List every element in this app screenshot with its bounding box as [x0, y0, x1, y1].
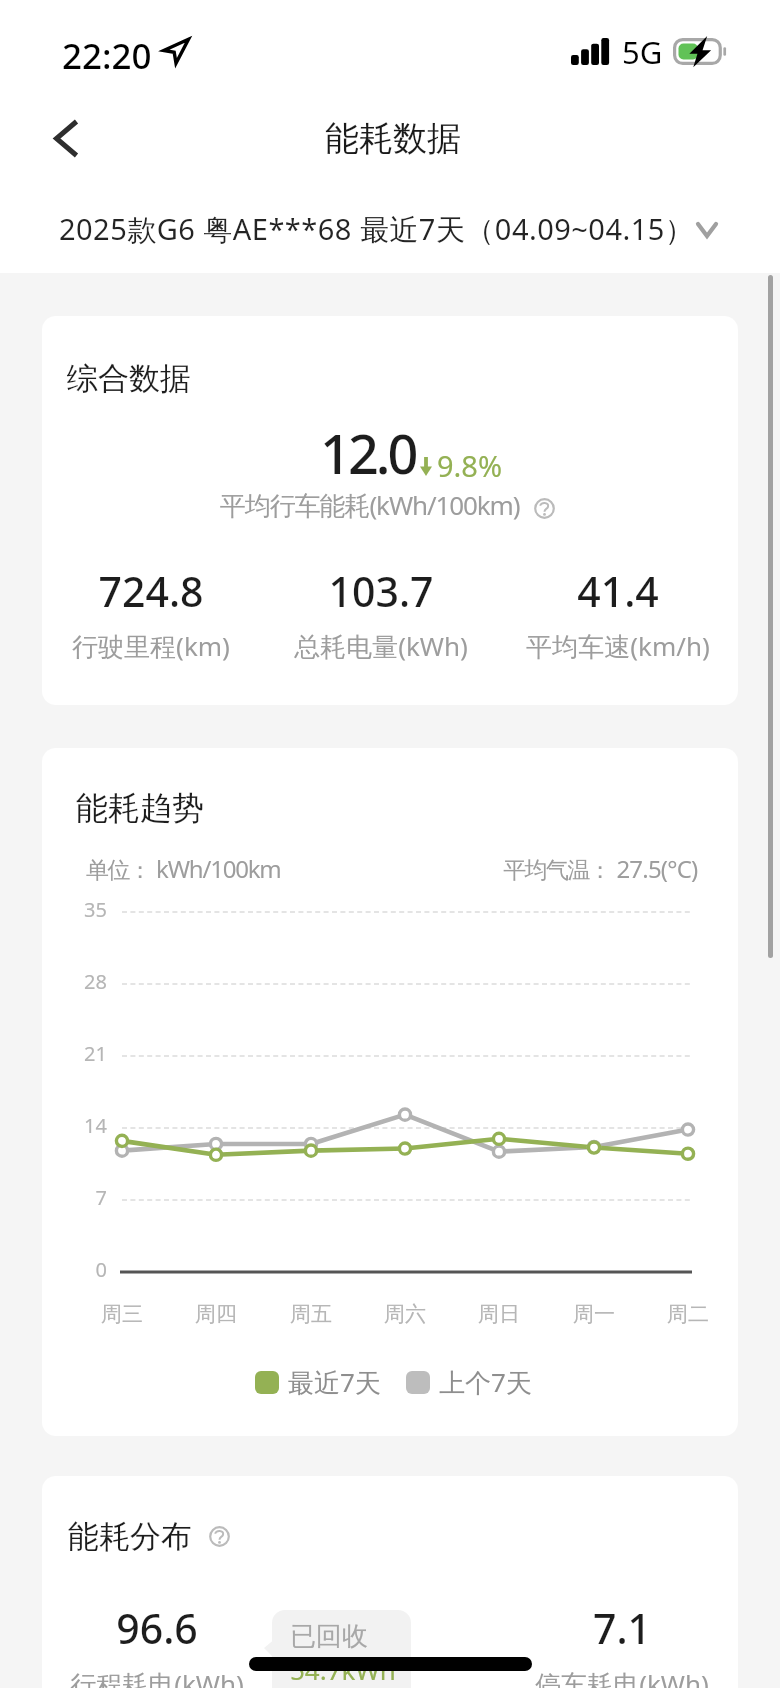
staticText: 724.8 — [42, 563, 301, 619]
staticText: 能耗数据 — [143, 117, 643, 160]
staticText: 27.5(°C) — [611, 852, 698, 885]
staticText: 周六 — [345, 1301, 465, 1327]
staticText: 96.6 — [42, 1600, 307, 1656]
staticText: 9.8% — [437, 446, 503, 485]
staticText: 14 — [63, 1112, 107, 1139]
staticText: 平均行车能耗(kWh/100km) — [220, 487, 520, 523]
staticText: 周四 — [156, 1301, 276, 1327]
button[interactable]: 2025款G6 粤AE***68 最近7天（04.09~04.15） — [0, 197, 780, 263]
staticText: 2025款G6 粤AE***68 最近7天（04.09~04.15） — [59, 209, 695, 249]
staticText: 综合数据 — [67, 359, 191, 398]
staticText: 35 — [63, 896, 107, 923]
staticText: 41.4 — [468, 563, 738, 619]
staticText: 21 — [63, 1040, 107, 1067]
staticText: 周日 — [439, 1301, 559, 1327]
staticText: 能耗分布 — [68, 1517, 192, 1556]
staticText: 周一 — [534, 1301, 654, 1327]
staticText: 行驶里程(km) — [42, 628, 301, 664]
staticText: 平均气温： — [504, 856, 611, 885]
staticText: 28 — [63, 968, 107, 995]
button[interactable]: 上个7天 — [406, 1364, 532, 1400]
staticText: 22:20 — [62, 32, 152, 80]
staticText: 行程耗电(kWh) — [42, 1666, 307, 1688]
staticText: 7.1 — [472, 1600, 738, 1656]
staticText: 单位： — [86, 856, 151, 885]
staticText: 平均车速(km/h) — [468, 628, 738, 664]
staticText: 停车耗电(kWh) — [472, 1666, 738, 1688]
staticText: 5G — [622, 31, 663, 73]
staticText: 12.0 — [320, 416, 416, 490]
staticText: 最近7天 — [288, 1364, 381, 1400]
staticText: 周二 — [628, 1301, 738, 1327]
staticText: 能耗趋势 — [76, 788, 204, 828]
staticText: 周三 — [62, 1301, 182, 1327]
staticText: 0 — [63, 1256, 107, 1283]
staticText: 周五 — [251, 1301, 371, 1327]
staticText: 总耗电量(kWh) — [231, 628, 531, 664]
staticText: 已回收 — [290, 1620, 368, 1653]
staticText: 54.7kWh — [290, 1652, 396, 1687]
staticText: 103.7 — [231, 563, 531, 619]
staticText: 7 — [63, 1184, 107, 1211]
button[interactable]: Back — [31, 103, 101, 173]
staticText: 上个7天 — [439, 1364, 532, 1400]
staticText: kWh/100km — [151, 852, 281, 885]
button[interactable]: 最近7天 — [255, 1364, 381, 1400]
